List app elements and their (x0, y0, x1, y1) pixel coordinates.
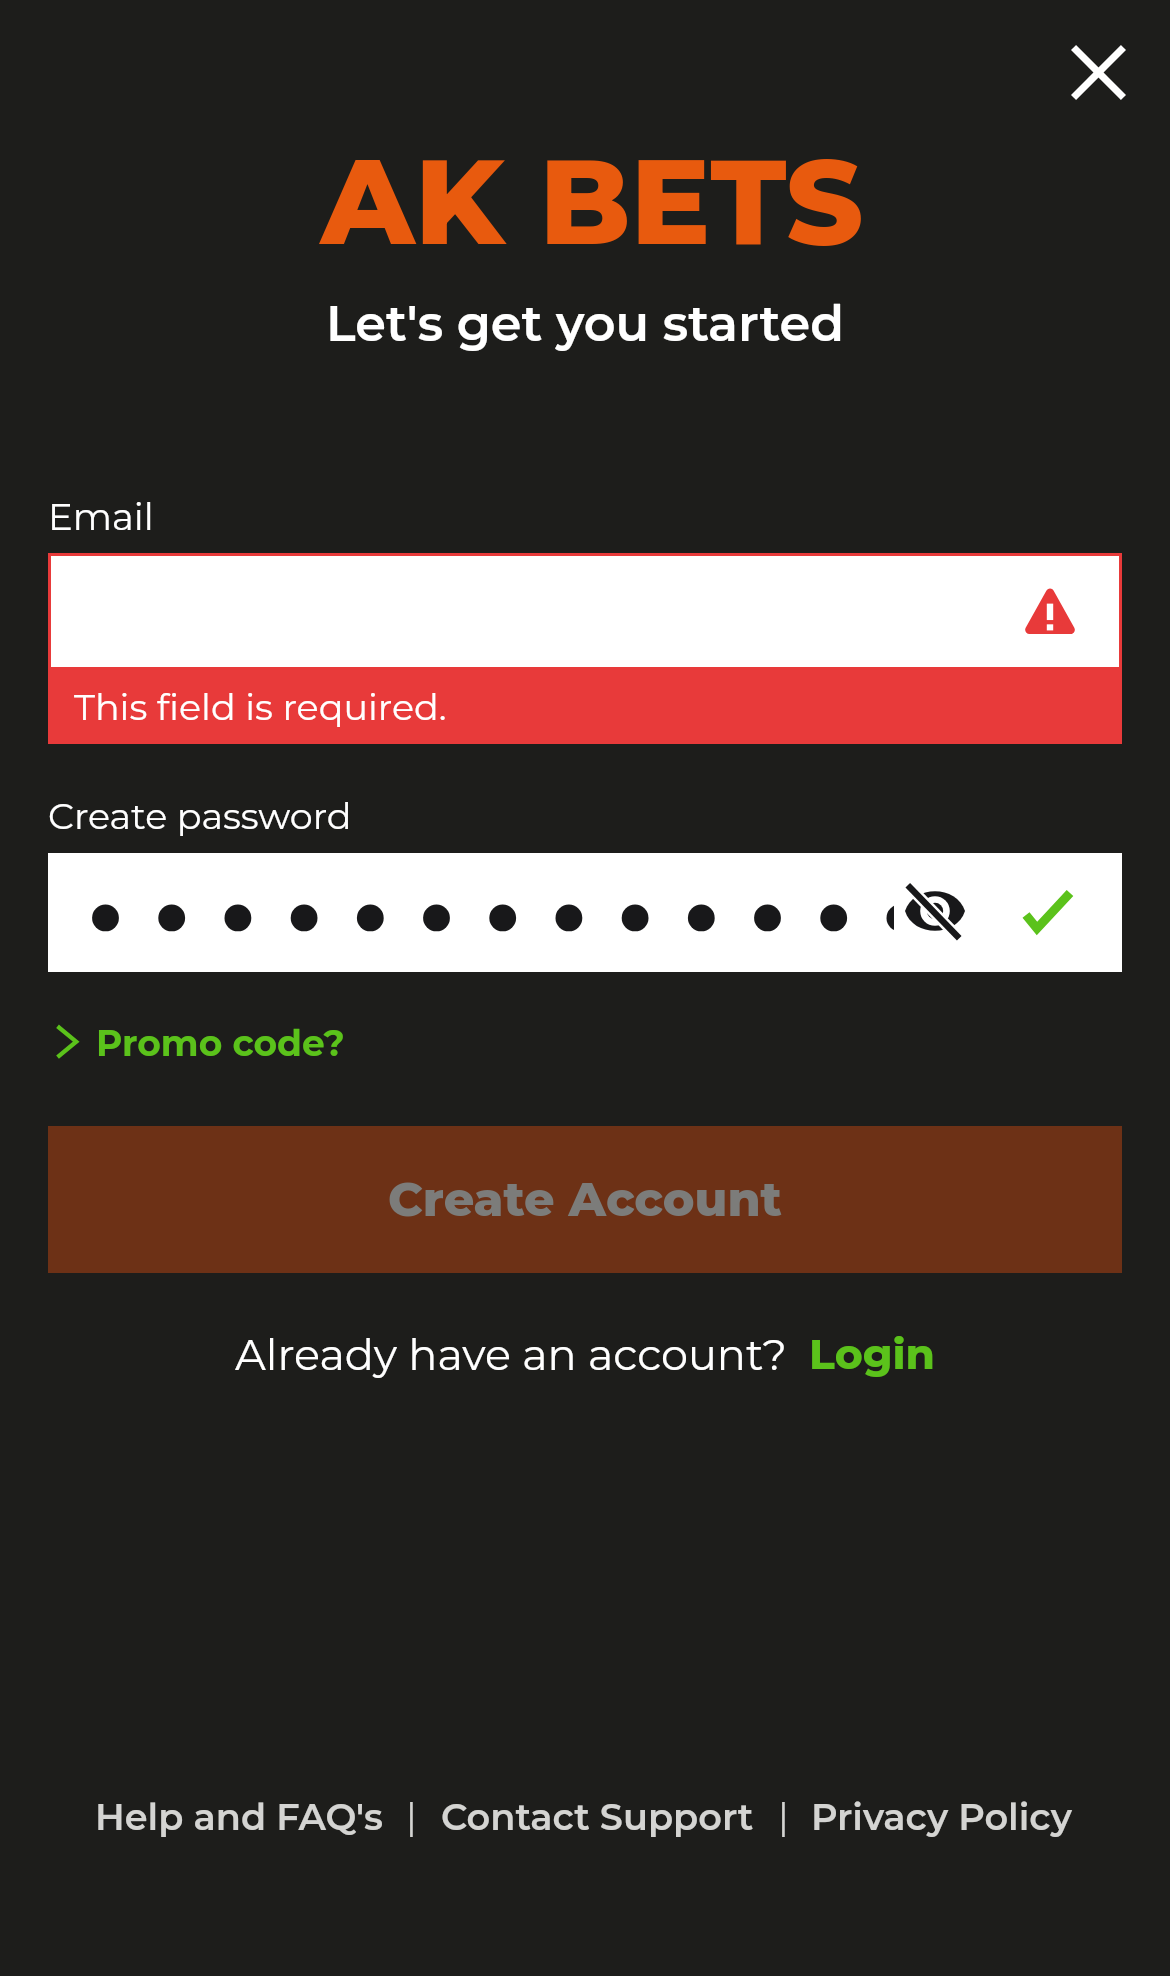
staticText: Email (48, 494, 154, 539)
button[interactable]: Login (809, 1328, 936, 1380)
staticText: Let's get you started (0, 293, 1170, 353)
button[interactable]: Error (51, 556, 1119, 667)
staticText: | (778, 1794, 789, 1839)
staticText: This field is required. (74, 685, 447, 729)
button[interactable]: Promo code? (44, 1008, 350, 1076)
button[interactable]: Privacy Policy (811, 1794, 1072, 1839)
staticText: AK BETS (7, 129, 1170, 274)
button[interactable]: Contact Support (441, 1794, 754, 1839)
staticText: Create Account (48, 1170, 1122, 1228)
staticText: Create password (48, 794, 352, 838)
button[interactable]: Create Account (48, 1126, 1122, 1273)
button[interactable]: Help and FAQ's (95, 1794, 383, 1839)
button[interactable]: Close (1038, 12, 1158, 132)
staticText: Promo code? (96, 1021, 345, 1065)
button[interactable]: Show password (898, 874, 972, 948)
other: Error (1026, 589, 1074, 634)
staticText: | (406, 1794, 417, 1839)
staticText: Already have an account? (235, 1328, 787, 1380)
button[interactable]: Show password (48, 853, 1122, 972)
